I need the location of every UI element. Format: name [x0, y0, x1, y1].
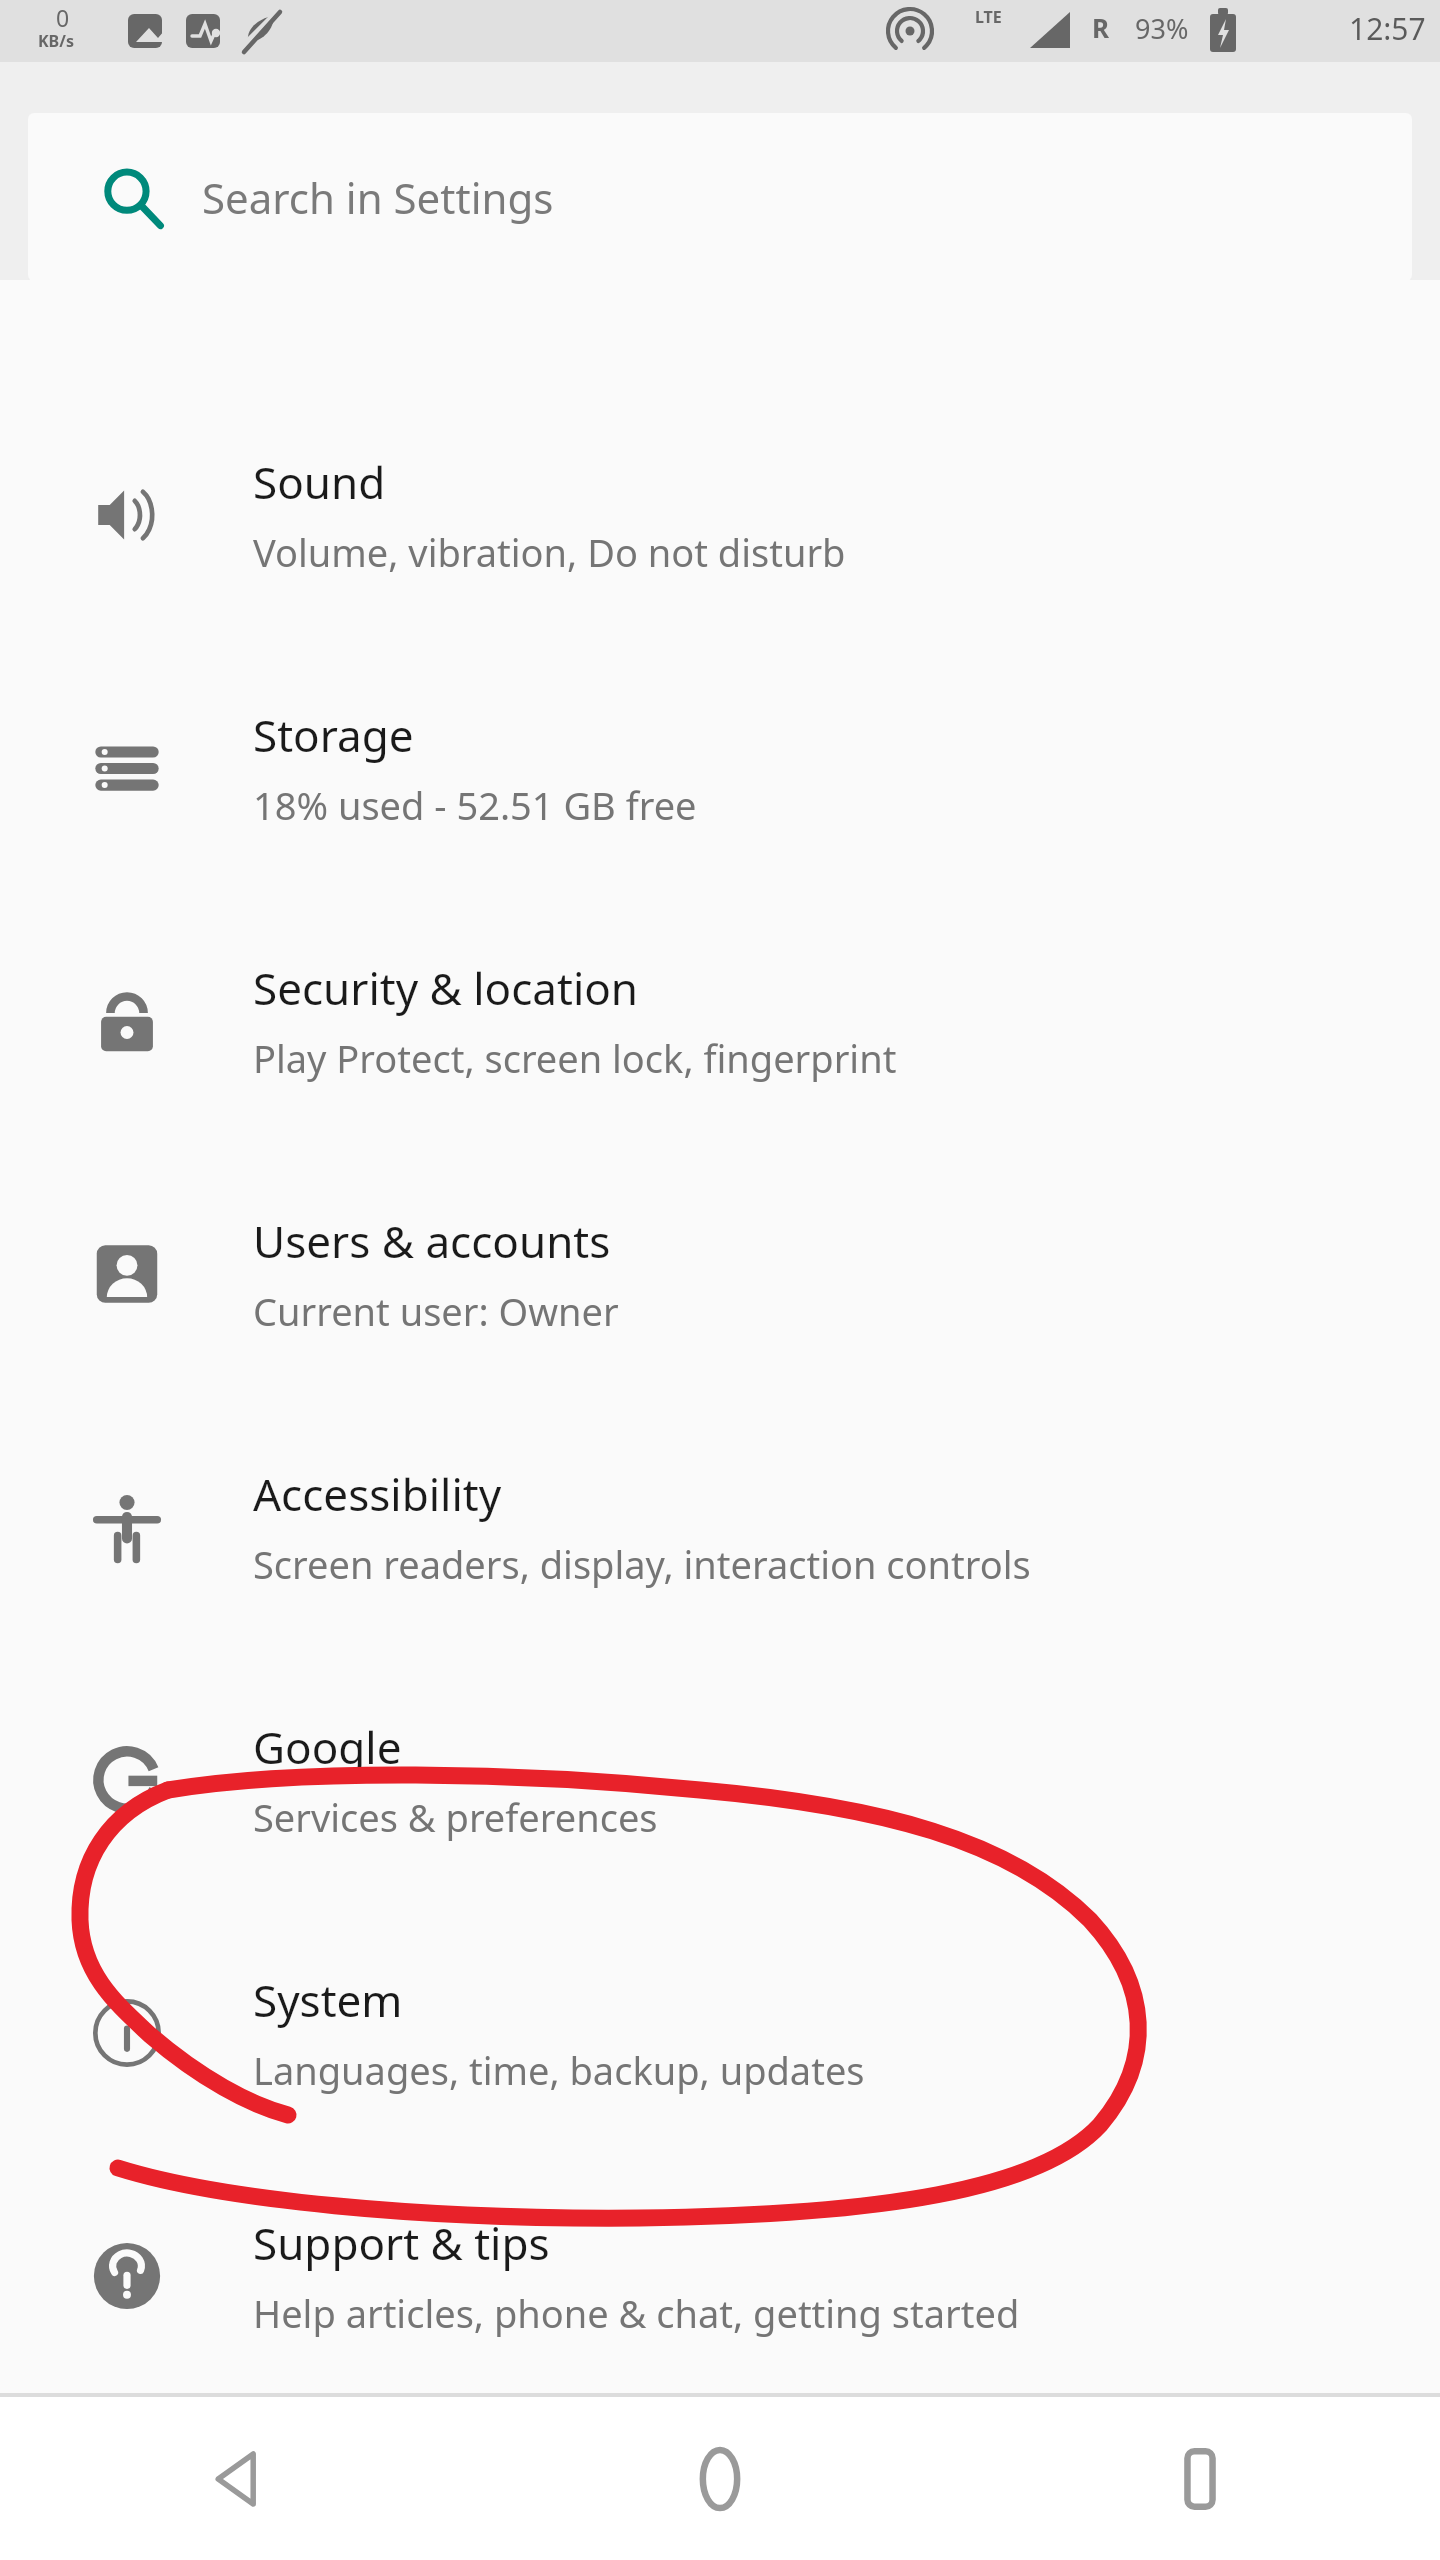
staticText: Services & preferences: [253, 1791, 658, 1843]
staticText: Screen readers, display, interaction con…: [253, 1538, 1031, 1590]
staticText: Volume, vibration, Do not disturb: [253, 526, 846, 578]
staticText: R: [1092, 10, 1110, 45]
button[interactable]: Back: [0, 2397, 480, 2560]
staticText: Storage: [253, 705, 414, 765]
staticText: 12:57: [1349, 8, 1426, 49]
staticText: Security & location: [253, 958, 639, 1018]
staticText: 93%: [1135, 10, 1189, 47]
button[interactable]: Home: [480, 2397, 960, 2560]
staticText: Users & accounts: [253, 1211, 611, 1271]
staticText: System: [253, 1970, 403, 2030]
staticText: Languages, time, backup, updates: [253, 2044, 865, 2096]
staticText: KB/s: [38, 30, 74, 52]
staticText: 18% used - 52.51 GB free: [253, 779, 697, 831]
staticText: Play Protect, screen lock, fingerprint: [253, 1032, 897, 1084]
button[interactable]: Accessibility: [0, 1400, 1440, 1653]
button[interactable]: Sound: [0, 388, 1440, 641]
button[interactable]: Users & accounts: [0, 1147, 1440, 1400]
staticText: Current user: Owner: [253, 1285, 619, 1337]
staticText: Google: [253, 1717, 402, 1777]
button[interactable]: Security & location: [0, 894, 1440, 1147]
staticText: Accessibility: [253, 1464, 502, 1524]
button[interactable]: Recent apps: [960, 2397, 1440, 2560]
button[interactable]: Search in Settings: [28, 113, 1412, 281]
button[interactable]: Storage: [0, 641, 1440, 894]
staticText: Help articles, phone & chat, getting sta…: [253, 2287, 1020, 2339]
button[interactable]: Support & tips: [0, 2159, 1440, 2393]
button[interactable]: Google: [0, 1653, 1440, 1906]
staticText: 0: [56, 2, 70, 33]
staticText: LTE: [975, 6, 1002, 28]
button[interactable]: System: [0, 1906, 1440, 2159]
staticText: Support & tips: [253, 2213, 550, 2273]
staticText: Sound: [253, 452, 386, 512]
staticText: Search in Settings: [202, 169, 554, 226]
